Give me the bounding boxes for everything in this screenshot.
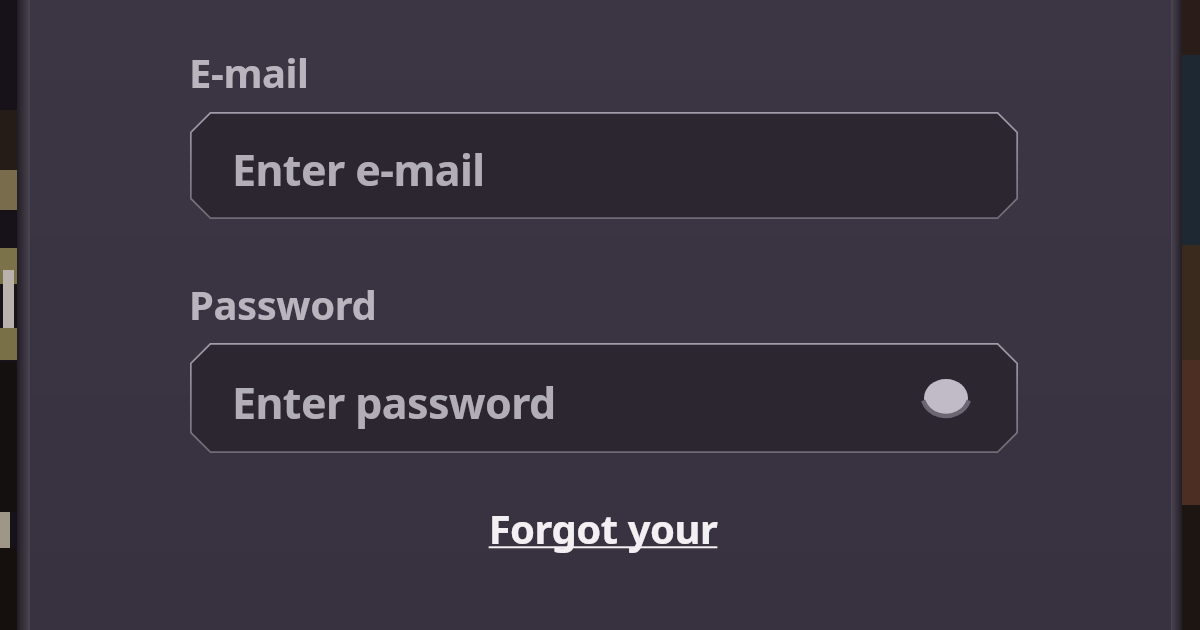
button[interactable]: Enter password [190, 343, 1018, 453]
staticText: Password [189, 277, 377, 331]
staticText: Enter e-mail [232, 140, 485, 199]
button[interactable]: Forgot your password? [413, 497, 793, 557]
staticText: E-mail [189, 45, 309, 99]
button[interactable]: Enter e-mail [190, 112, 1018, 219]
staticText: Enter password [232, 373, 556, 432]
button[interactable]: Show password [914, 366, 978, 430]
staticText: Forgot your password? [413, 501, 793, 561]
